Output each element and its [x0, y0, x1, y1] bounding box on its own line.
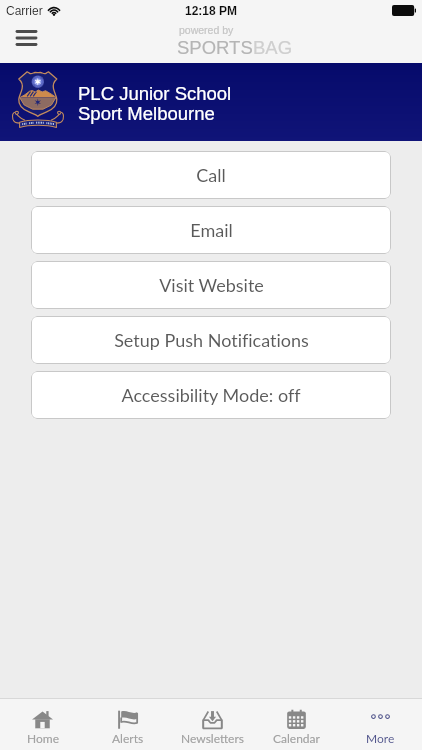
- button[interactable]: Setup Push Notifications: [31, 316, 391, 364]
- staticText: 12:18 PM: [185, 4, 238, 17]
- button[interactable]: Menu: [7, 20, 45, 55]
- staticText: Email: [190, 219, 233, 241]
- staticText: Carrier: [6, 4, 43, 17]
- staticText: SPORTS: [177, 37, 253, 58]
- staticText: More: [366, 731, 395, 745]
- button[interactable]: Newsletters: [170, 704, 254, 745]
- staticText: Calendar: [273, 731, 320, 745]
- button[interactable]: Accessibility Mode: off: [31, 371, 391, 419]
- staticText: Accessibility Mode: off: [121, 384, 301, 406]
- staticText: Call: [196, 164, 226, 186]
- button[interactable]: More: [338, 704, 422, 745]
- staticText: Home: [27, 731, 59, 745]
- button[interactable]: Alerts: [85, 704, 170, 745]
- button[interactable]: Home: [0, 704, 85, 745]
- button[interactable]: Calendar: [254, 704, 338, 745]
- staticText: Newsletters: [181, 731, 244, 745]
- staticText: PLC Junior School Sport Melbourne: [78, 83, 232, 124]
- staticText: Setup Push Notifications: [114, 329, 309, 351]
- staticText: Alerts: [112, 731, 144, 745]
- button[interactable]: Visit Website: [31, 261, 391, 309]
- button[interactable]: Call: [31, 151, 391, 199]
- button[interactable]: Email: [31, 206, 391, 254]
- staticText: BAG: [253, 37, 293, 58]
- staticText: Visit Website: [159, 274, 264, 296]
- staticText: powered by: [179, 24, 234, 36]
